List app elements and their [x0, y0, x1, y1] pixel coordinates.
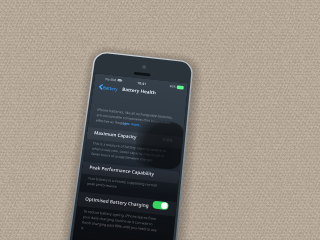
button[interactable]: Optimised Battery Charging toggle [152, 199, 170, 211]
button[interactable]: Back to Battery [98, 84, 122, 93]
button[interactable] [86, 163, 181, 175]
button[interactable] [89, 127, 184, 139]
